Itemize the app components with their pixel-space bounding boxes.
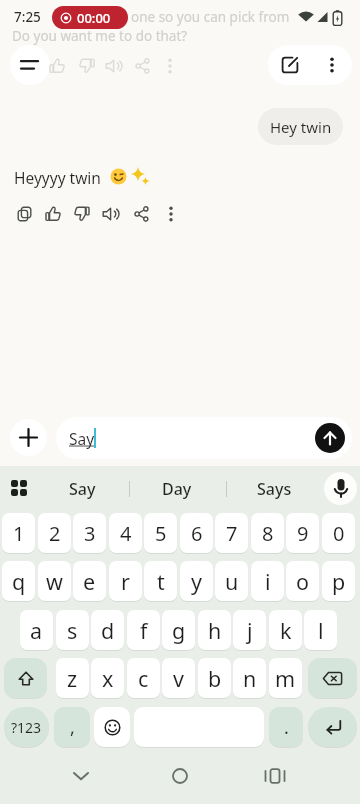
button[interactable]: Day — [129, 468, 225, 510]
staticText: n — [243, 664, 257, 693]
button[interactable] — [67, 766, 95, 786]
button[interactable] — [324, 472, 357, 505]
button[interactable]: k — [269, 610, 302, 650]
button[interactable]: Say — [56, 417, 352, 459]
button[interactable]: g — [162, 610, 195, 650]
button[interactable]: c — [127, 658, 160, 698]
button[interactable] — [134, 206, 149, 222]
button[interactable]: 2 — [38, 513, 71, 553]
staticText: 9 — [297, 520, 309, 547]
button[interactable] — [316, 49, 348, 81]
staticText: one so you can pick from — [131, 8, 290, 26]
button[interactable]: 6 — [180, 513, 213, 553]
button[interactable]: u — [215, 561, 248, 601]
button[interactable]: 1 — [2, 513, 35, 553]
button[interactable] — [45, 206, 61, 222]
staticText: x — [102, 664, 114, 693]
staticText: b — [208, 664, 222, 693]
button[interactable] — [8, 478, 30, 498]
button[interactable] — [49, 58, 65, 74]
button[interactable]: v — [162, 658, 195, 698]
button[interactable] — [261, 766, 289, 786]
button[interactable]: 0 — [322, 513, 355, 553]
staticText: Heyyyy twin — [14, 167, 101, 188]
button[interactable] — [105, 58, 123, 74]
button[interactable]: a — [20, 610, 53, 650]
button[interactable]: l — [304, 610, 337, 650]
staticText: t — [157, 567, 165, 596]
staticText: Says — [257, 478, 292, 500]
staticText: l — [318, 616, 324, 645]
button[interactable] — [135, 58, 150, 74]
button[interactable] — [308, 658, 357, 698]
button[interactable]: s — [56, 610, 89, 650]
button[interactable]: w — [38, 561, 71, 601]
button[interactable]: 7 — [215, 513, 248, 553]
button[interactable]: e — [73, 561, 106, 601]
button[interactable]: p — [322, 561, 355, 601]
button[interactable]: t — [144, 561, 177, 601]
staticText: 00:00 — [77, 9, 111, 27]
staticText: Do you want me to do that? — [12, 27, 188, 45]
button[interactable]: Say — [36, 468, 128, 510]
button[interactable] — [10, 45, 50, 85]
button[interactable]: b — [198, 658, 231, 698]
button[interactable]: m — [269, 658, 302, 698]
staticText: i — [265, 567, 271, 596]
button[interactable]: x — [91, 658, 124, 698]
button[interactable] — [79, 58, 95, 74]
staticText: o — [296, 567, 310, 596]
button[interactable]: j — [233, 610, 266, 650]
staticText: 4 — [120, 520, 132, 547]
button[interactable] — [74, 206, 90, 222]
button[interactable] — [102, 206, 120, 222]
staticText: 3 — [84, 520, 96, 547]
staticText: r — [121, 567, 130, 596]
button[interactable]: ?123 — [4, 707, 49, 747]
button[interactable]: h — [198, 610, 231, 650]
staticText: 6 — [191, 520, 203, 547]
staticText: a — [30, 616, 43, 645]
button[interactable]: , — [54, 707, 90, 747]
button[interactable]: f — [127, 610, 160, 650]
staticText: q — [12, 567, 26, 596]
button[interactable]: i — [251, 561, 284, 601]
staticText: c — [138, 664, 149, 693]
button[interactable] — [168, 58, 172, 74]
staticText: v — [173, 664, 184, 693]
button[interactable] — [308, 707, 357, 747]
button[interactable] — [17, 206, 32, 222]
button[interactable]: Says — [226, 468, 322, 510]
button[interactable] — [4, 658, 47, 698]
button[interactable] — [166, 766, 194, 786]
button[interactable]: 3 — [73, 513, 106, 553]
button[interactable] — [315, 423, 345, 453]
button[interactable]: y — [180, 561, 213, 601]
staticText: d — [101, 616, 115, 645]
staticText: h — [208, 616, 222, 645]
button[interactable]: q — [2, 561, 35, 601]
button[interactable] — [10, 419, 47, 456]
button[interactable]: z — [56, 658, 89, 698]
staticText: . — [284, 715, 289, 740]
staticText: k — [280, 616, 292, 645]
button[interactable] — [169, 206, 173, 222]
button[interactable]: n — [233, 658, 266, 698]
staticText: e — [83, 567, 96, 596]
button[interactable]: 4 — [109, 513, 142, 553]
button[interactable]: 8 — [251, 513, 284, 553]
button[interactable]: o — [286, 561, 319, 601]
staticText: , — [70, 715, 75, 740]
button[interactable] — [94, 707, 130, 747]
staticText: 0 — [333, 520, 345, 547]
staticText: 8 — [262, 520, 274, 547]
button[interactable]: d — [91, 610, 124, 650]
staticText: 7 — [226, 520, 238, 547]
button[interactable] — [280, 55, 300, 75]
button[interactable]: . — [269, 707, 303, 747]
staticText: 5 — [155, 520, 167, 547]
button[interactable]: 9 — [286, 513, 319, 553]
button[interactable]: 5 — [144, 513, 177, 553]
button[interactable]: r — [109, 561, 142, 601]
